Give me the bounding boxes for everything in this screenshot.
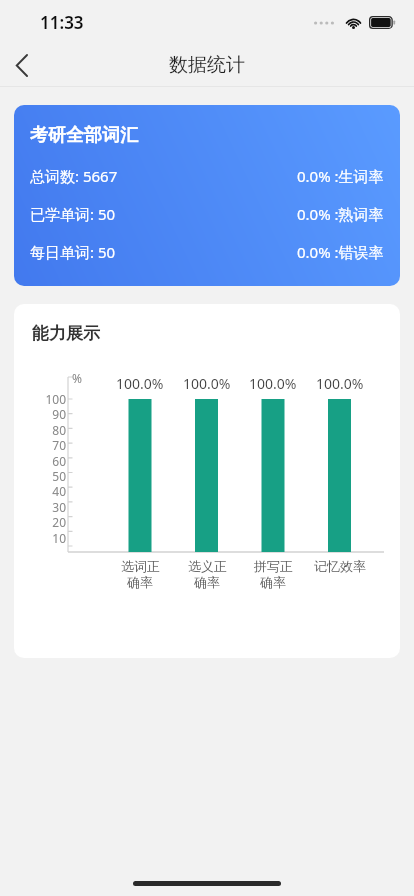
staticText: 确率 xyxy=(260,574,286,590)
button[interactable]: Back xyxy=(0,44,44,86)
staticText: 数据统计 xyxy=(169,53,245,77)
staticText: 0.0% :熟词率 xyxy=(297,204,384,224)
staticText: 20 xyxy=(52,514,66,530)
staticText: 选义正 xyxy=(188,558,227,574)
staticText: 选词正 xyxy=(121,558,160,574)
staticText: 30 xyxy=(52,499,66,515)
staticText: 100.0% xyxy=(316,374,364,393)
staticText: 10 xyxy=(52,530,66,546)
button[interactable]: 考研全部词汇 xyxy=(14,105,400,286)
staticText: 100.0% xyxy=(183,374,231,393)
staticText: 考研全部词汇 xyxy=(30,124,138,147)
staticText: % xyxy=(72,370,82,386)
staticText: 11:33 xyxy=(40,11,84,34)
staticText: 60 xyxy=(52,453,66,469)
staticText: 90 xyxy=(52,406,66,422)
staticText: 能力展示 xyxy=(32,323,100,344)
staticText: 70 xyxy=(52,437,66,453)
staticText: 总词数: 5667 xyxy=(30,166,118,186)
staticText: 100 xyxy=(45,391,66,407)
staticText: 确率 xyxy=(127,574,153,590)
staticText: 拼写正 xyxy=(254,558,293,574)
staticText: 80 xyxy=(52,422,66,438)
staticText: 0.0% :生词率 xyxy=(297,166,384,186)
staticText: 0.0% :错误率 xyxy=(297,242,384,262)
staticText: 40 xyxy=(52,483,66,499)
staticText: 100.0% xyxy=(116,374,164,393)
staticText: 记忆效率 xyxy=(314,558,366,574)
staticText: 50 xyxy=(52,468,66,484)
staticText: 确率 xyxy=(194,574,220,590)
staticText: 100.0% xyxy=(249,374,297,393)
staticText: 每日单词: 50 xyxy=(30,242,116,262)
staticText: 已学单词: 50 xyxy=(30,204,116,224)
